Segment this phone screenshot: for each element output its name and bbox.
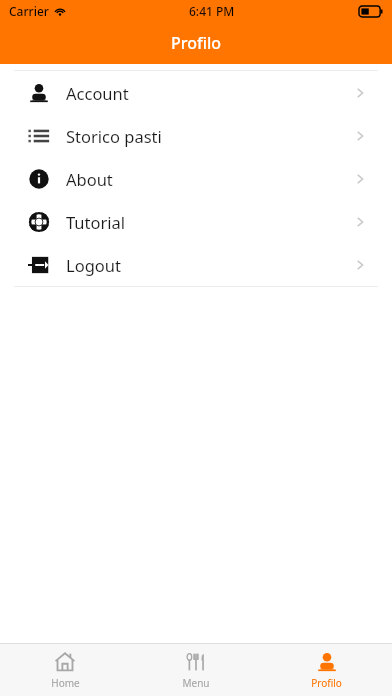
button[interactable]: Logout bbox=[0, 243, 392, 286]
staticText: Storico pasti bbox=[66, 125, 162, 147]
staticText: Menu bbox=[182, 676, 210, 690]
staticText: Profilo bbox=[311, 676, 342, 690]
button[interactable]: Account bbox=[0, 71, 392, 114]
button[interactable]: Home bbox=[0, 644, 130, 696]
staticText: Home bbox=[51, 676, 80, 690]
staticText: Logout bbox=[66, 254, 121, 276]
staticText: 6:41 PM bbox=[189, 3, 235, 19]
staticText: Tutorial bbox=[66, 211, 126, 233]
staticText: Account bbox=[66, 82, 129, 104]
staticText: About bbox=[66, 168, 113, 190]
staticText: Carrier bbox=[9, 3, 49, 19]
staticText: Profilo bbox=[171, 32, 222, 54]
button[interactable]: About bbox=[0, 157, 392, 200]
button[interactable]: Menu bbox=[130, 644, 261, 696]
button[interactable]: Storico pasti bbox=[0, 114, 392, 157]
button[interactable]: Profilo bbox=[261, 644, 392, 696]
button[interactable]: Tutorial bbox=[0, 200, 392, 243]
